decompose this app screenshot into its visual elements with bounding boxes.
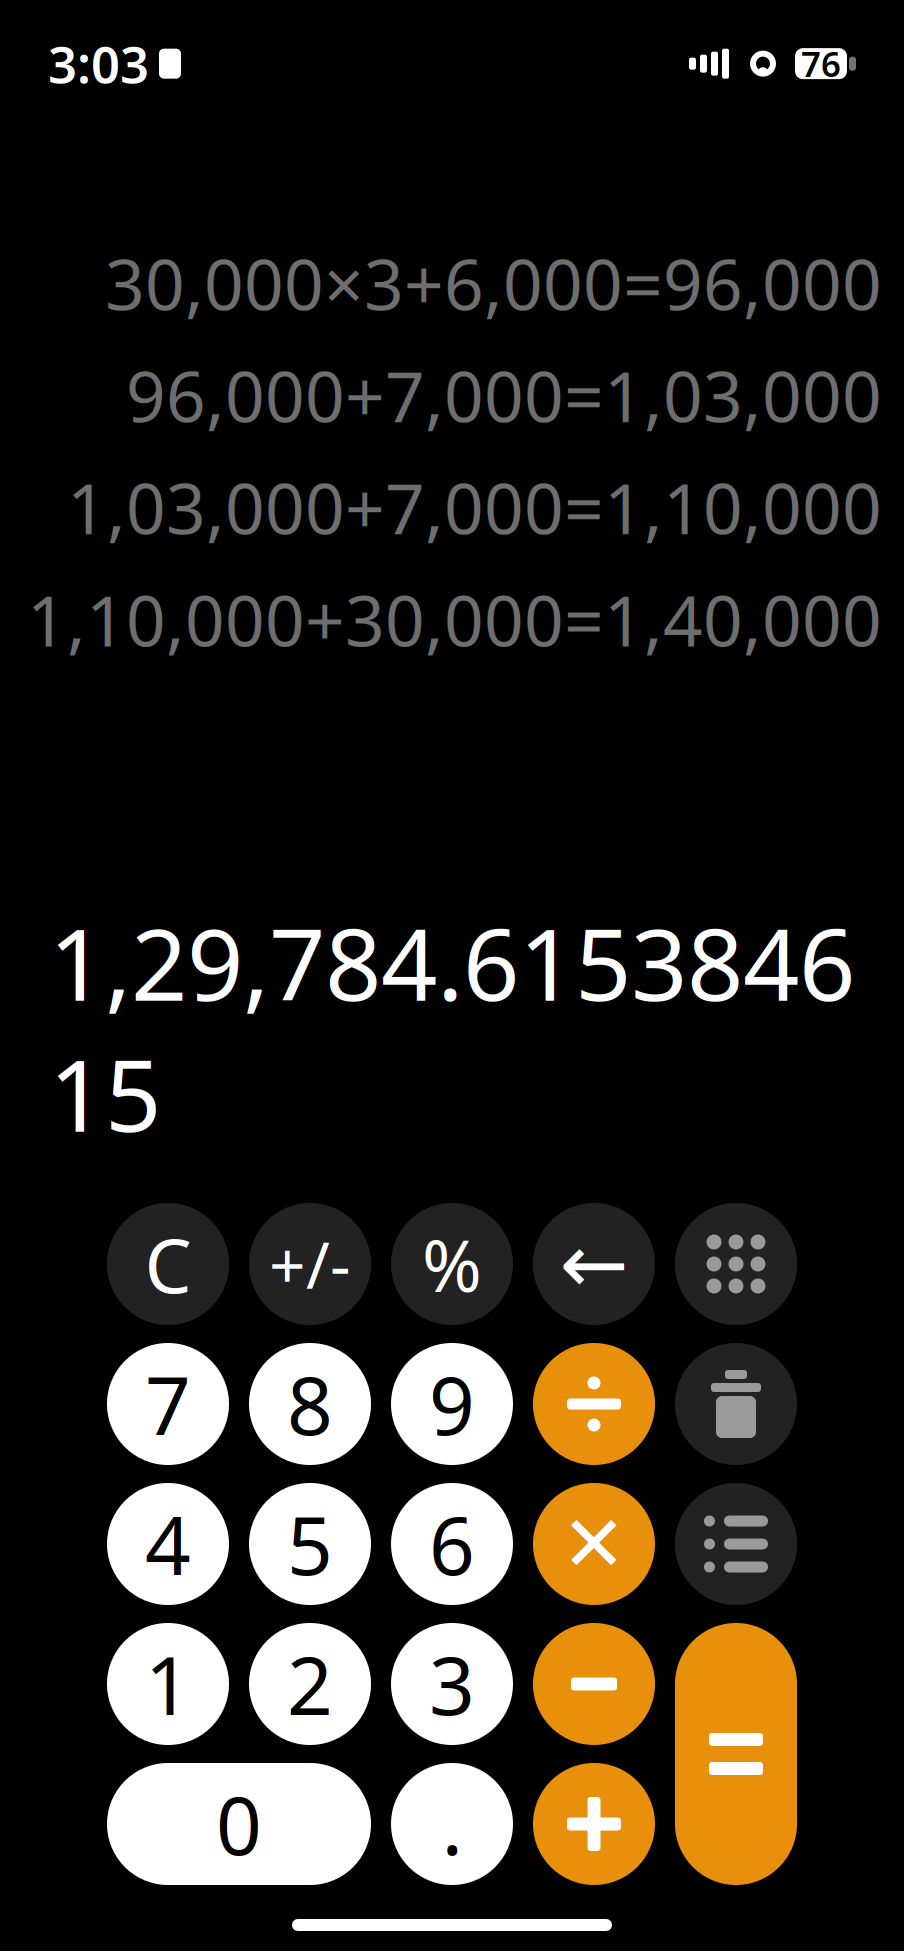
button[interactable]: +/- (249, 1203, 371, 1325)
button[interactable]: C (107, 1203, 229, 1325)
staticText: 96,000+7,000=1,03,000 (126, 349, 882, 441)
staticText: 4 (145, 1491, 191, 1597)
button[interactable]: 2 (249, 1623, 371, 1745)
button[interactable]: History (675, 1483, 797, 1605)
button[interactable]: 6 (391, 1483, 513, 1605)
staticText: +/- (269, 1221, 351, 1306)
button[interactable]: 4 (107, 1483, 229, 1605)
staticText: 6 (429, 1491, 475, 1597)
staticText: . (441, 1771, 462, 1877)
staticText: C (144, 1214, 191, 1314)
button[interactable]: Multiply (533, 1483, 655, 1605)
button[interactable]: Backspace (533, 1203, 655, 1325)
staticText: 9 (429, 1351, 475, 1457)
button[interactable]: 1 (107, 1623, 229, 1745)
staticText: % (422, 1216, 482, 1312)
button[interactable]: 7 (107, 1343, 229, 1465)
button[interactable]: Equals (675, 1623, 797, 1885)
button[interactable]: % (391, 1203, 513, 1325)
button[interactable]: Divide (533, 1343, 655, 1465)
staticText: 2 (287, 1631, 333, 1737)
staticText: 3 (429, 1631, 475, 1737)
button[interactable]: 0 (107, 1763, 371, 1885)
staticText: ← (559, 1217, 628, 1311)
button[interactable]: 8 (249, 1343, 371, 1465)
button[interactable]: Plus (533, 1763, 655, 1885)
button[interactable]: . (391, 1763, 513, 1885)
button[interactable]: 3 (391, 1623, 513, 1745)
staticText: 1,29,784.615384615 (49, 897, 855, 1159)
button[interactable]: 5 (249, 1483, 371, 1605)
staticText: 1,03,000+7,000=1,10,000 (67, 461, 882, 553)
staticText: 5 (287, 1491, 333, 1597)
button[interactable]: Minus (533, 1623, 655, 1745)
staticText: 3:03 (48, 30, 149, 97)
staticText: 1 (145, 1631, 191, 1737)
staticText: 0 (216, 1771, 262, 1877)
button[interactable]: Keypad (675, 1203, 797, 1325)
staticText: 7 (145, 1351, 191, 1457)
button[interactable]: 9 (391, 1343, 513, 1465)
staticText: 8 (287, 1351, 333, 1457)
staticText: 30,000×3+6,000=96,000 (105, 237, 882, 329)
staticText: 76 (801, 41, 841, 87)
staticText: ✕ (561, 1500, 626, 1588)
staticText: 1,10,000+30,000=1,40,000 (27, 573, 882, 666)
button[interactable]: Clear history (675, 1343, 797, 1465)
